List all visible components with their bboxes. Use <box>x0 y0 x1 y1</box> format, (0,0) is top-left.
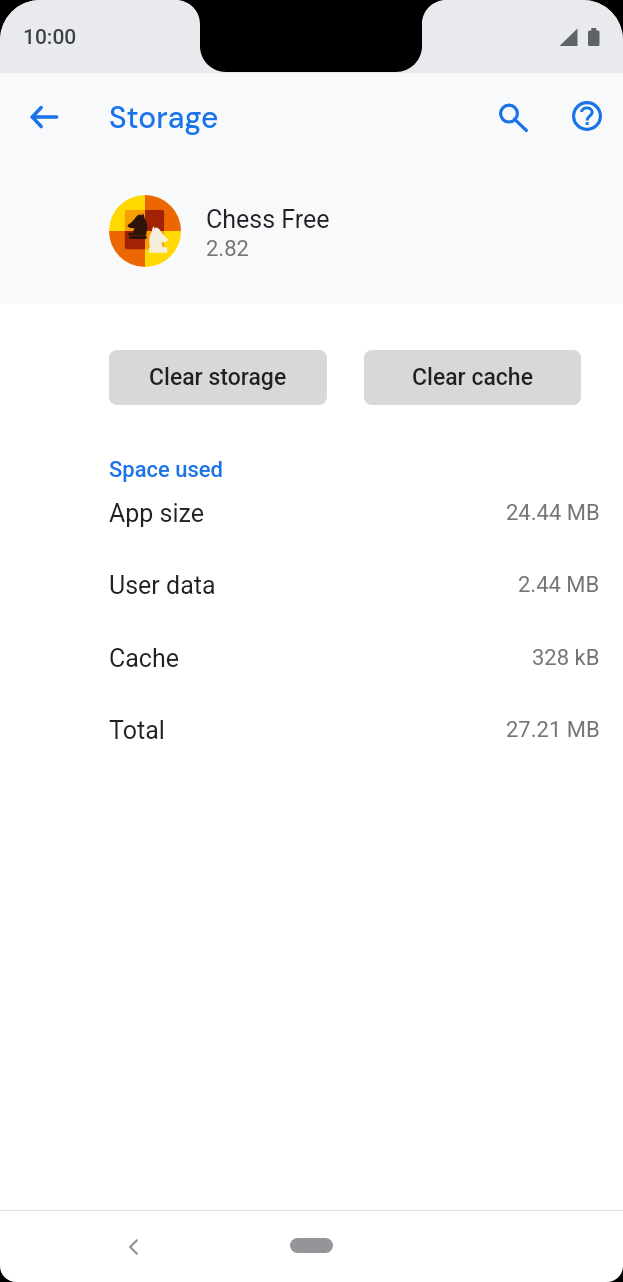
staticText: Total <box>109 716 165 745</box>
staticText: Cache <box>109 644 179 673</box>
button[interactable]: App size <box>0 485 623 541</box>
staticText: 328 kB <box>532 645 600 671</box>
staticText: Chess Free <box>206 205 330 234</box>
staticText: Clear cache <box>412 364 533 391</box>
staticText: 10:00 <box>23 25 77 50</box>
staticText: 24.44 MB <box>506 500 600 526</box>
staticText: Clear storage <box>149 364 287 391</box>
button[interactable]: Clear storage <box>109 350 327 405</box>
button[interactable]: Navigate up <box>20 94 68 142</box>
button[interactable]: Cache <box>0 630 623 686</box>
button[interactable]: Back <box>110 1223 158 1271</box>
staticText: Storage <box>109 98 219 137</box>
staticText: 27.21 MB <box>506 717 600 743</box>
staticText: App size <box>109 499 205 528</box>
button[interactable]: Total <box>0 702 623 758</box>
button[interactable]: Search <box>490 92 538 140</box>
staticText: Space used <box>109 457 224 483</box>
button[interactable]: Chess Free <box>0 182 623 280</box>
button[interactable]: User data <box>0 557 623 613</box>
button[interactable]: Help <box>563 92 611 140</box>
staticText: 2.82 <box>206 236 249 262</box>
button[interactable]: Home <box>290 1238 333 1253</box>
staticText: User data <box>109 571 216 600</box>
button[interactable]: Clear cache <box>364 350 581 405</box>
staticText: 2.44 MB <box>518 572 600 598</box>
